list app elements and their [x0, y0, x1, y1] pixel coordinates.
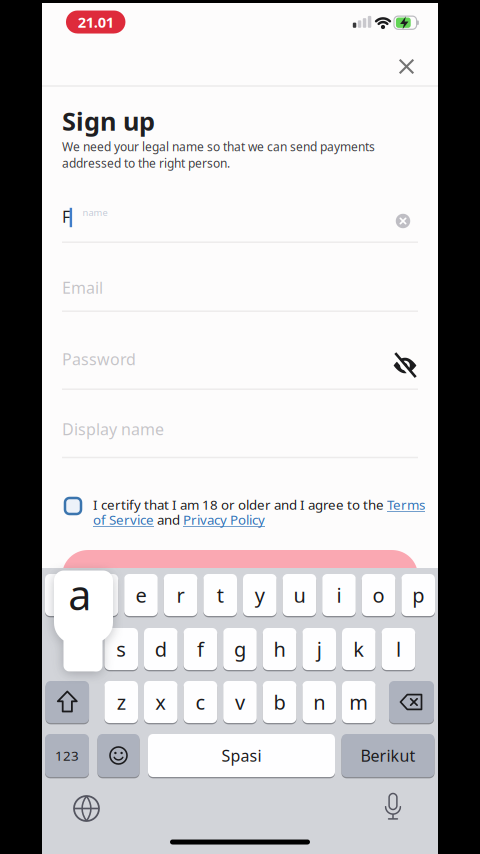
staticText: e: [135, 582, 146, 608]
button[interactable]: r: [164, 574, 197, 616]
button[interactable]: Spasi: [148, 734, 335, 777]
staticText: Password: [62, 348, 136, 370]
button[interactable]: Next keyboard: [64, 786, 108, 830]
button[interactable]: Stop screen recording: [66, 10, 125, 33]
staticText: j: [317, 636, 322, 662]
staticText: I certify that I am 18 or older and I ag…: [93, 496, 387, 513]
staticText: 21.01: [78, 12, 114, 32]
staticText: addressed to the right person.: [62, 155, 230, 171]
button[interactable]: p: [401, 574, 435, 616]
staticText: F: [62, 206, 70, 227]
staticText: name: [82, 206, 107, 219]
button[interactable]: d: [144, 628, 178, 670]
button[interactable]: s: [104, 628, 138, 670]
button[interactable]: Close: [384, 46, 428, 86]
button[interactable]: k: [342, 628, 376, 670]
button[interactable]: 123: [45, 734, 89, 777]
staticText: v: [235, 689, 245, 715]
button[interactable]: Password: [62, 339, 418, 379]
button[interactable]: Email: [62, 267, 418, 307]
button[interactable]: Full name: [62, 196, 418, 236]
button[interactable]: b: [263, 681, 296, 723]
staticText: a: [68, 567, 91, 622]
staticText: r: [177, 582, 185, 608]
staticText: u: [293, 582, 305, 608]
staticText: l: [396, 636, 401, 662]
staticText: i: [336, 582, 341, 608]
staticText: t: [217, 582, 224, 608]
staticText: Spasi: [221, 745, 261, 766]
button[interactable]: Sign up: [62, 550, 418, 612]
staticText: f: [197, 636, 204, 662]
staticText: Berikut: [360, 745, 415, 766]
staticText: We need your legal name so that we can s…: [62, 138, 375, 154]
staticText: of Service: [93, 511, 154, 528]
staticText: k: [353, 636, 364, 662]
staticText: o: [373, 582, 385, 608]
staticText: x: [155, 689, 166, 715]
button[interactable]: z: [104, 681, 138, 723]
button[interactable]: Terms: [387, 496, 425, 513]
staticText: d: [155, 636, 167, 662]
button[interactable]: c: [184, 681, 217, 723]
button[interactable]: Delete: [389, 681, 434, 723]
staticText: g: [234, 636, 246, 662]
staticText: y: [255, 582, 265, 608]
button[interactable]: Display name: [62, 409, 418, 449]
button[interactable]: v: [223, 681, 257, 723]
staticText: Sign up: [62, 104, 155, 138]
button[interactable]: i: [322, 574, 356, 616]
button[interactable]: n: [302, 681, 336, 723]
button[interactable]: g: [223, 628, 257, 670]
button[interactable]: x: [144, 681, 178, 723]
button[interactable]: o: [362, 574, 395, 616]
button[interactable]: Show password: [385, 345, 425, 385]
button[interactable]: Clear text: [396, 214, 410, 228]
button[interactable]: u: [283, 574, 316, 616]
staticText: z: [117, 689, 126, 715]
button[interactable]: Privacy Policy: [183, 511, 265, 528]
staticText: Privacy Policy: [183, 511, 265, 528]
button[interactable]: w: [85, 574, 118, 616]
staticText: m: [349, 689, 368, 715]
staticText: Display name: [62, 418, 164, 440]
button[interactable]: Shift: [45, 681, 89, 723]
staticText: p: [412, 582, 424, 608]
button[interactable]: q: [45, 574, 79, 616]
button[interactable]: Dictation: [371, 786, 415, 830]
button[interactable]: Berikut: [341, 734, 434, 777]
button[interactable]: e: [124, 574, 158, 616]
staticText: c: [195, 689, 205, 715]
button[interactable]: of Service: [93, 511, 154, 528]
staticText: Email: [62, 277, 103, 298]
button[interactable]: I certify that I am 18 or older: [64, 497, 82, 515]
button[interactable]: m: [342, 681, 376, 723]
button[interactable]: l: [382, 628, 415, 670]
staticText: n: [313, 689, 325, 715]
staticText: Terms: [387, 496, 425, 513]
button[interactable]: t: [203, 574, 237, 616]
button[interactable]: h: [263, 628, 296, 670]
button[interactable]: y: [243, 574, 277, 616]
staticText: s: [116, 636, 126, 662]
button[interactable]: a: [54, 570, 113, 671]
button[interactable]: Emoji: [97, 734, 139, 777]
staticText: 123: [55, 747, 79, 764]
staticText: h: [274, 636, 286, 662]
staticText: and: [154, 511, 183, 528]
button[interactable]: j: [302, 628, 336, 670]
button[interactable]: f: [184, 628, 217, 670]
staticText: b: [274, 689, 286, 715]
